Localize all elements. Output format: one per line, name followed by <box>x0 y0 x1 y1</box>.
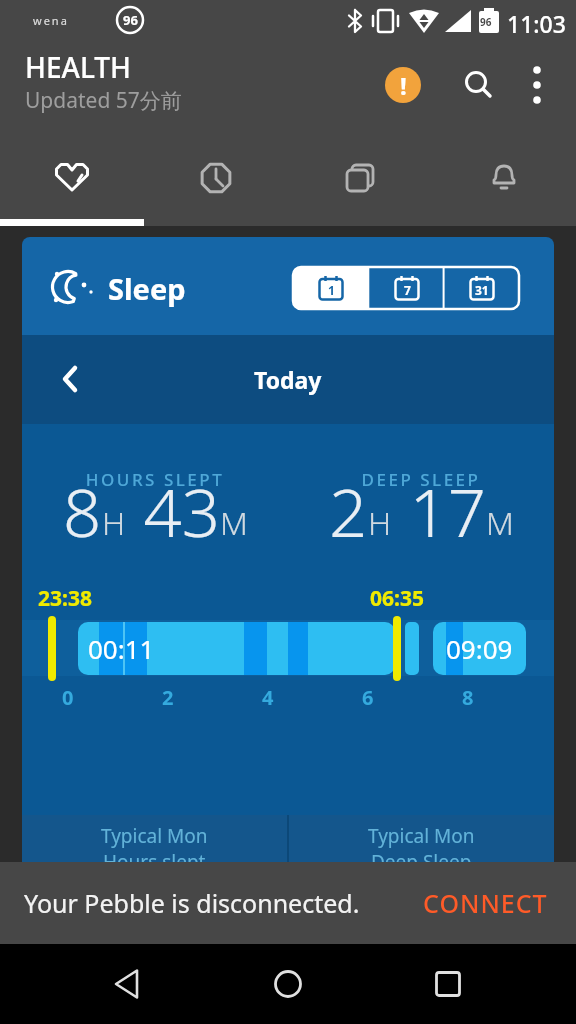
staticText: M <box>220 501 248 545</box>
button[interactable]: Today <box>22 335 554 424</box>
button[interactable]: 31 <box>444 267 519 309</box>
staticText: 96 <box>123 11 138 29</box>
staticText: Sleep <box>108 269 186 308</box>
staticText: ! <box>400 69 407 102</box>
staticText: 8 <box>63 465 102 556</box>
button[interactable]: Typical Mon <box>22 815 287 862</box>
staticText: Updated 57分前 <box>25 86 182 115</box>
button[interactable] <box>96 968 160 1000</box>
staticText: Deep Sleep <box>371 849 472 862</box>
staticText: 8 <box>462 684 474 711</box>
staticText: 31 <box>475 282 489 298</box>
staticText: M <box>486 501 514 545</box>
button[interactable] <box>460 67 496 103</box>
staticText: 0 <box>62 684 74 711</box>
staticText: DEEP SLEEP <box>288 468 554 491</box>
button[interactable] <box>432 130 576 226</box>
button[interactable] <box>0 130 144 226</box>
staticText: H <box>368 501 392 545</box>
button[interactable] <box>416 968 480 1000</box>
staticText: 09:09 <box>446 631 513 666</box>
button[interactable] <box>288 130 432 226</box>
staticText: 1 <box>328 282 335 298</box>
staticText: 00:11 <box>88 631 155 666</box>
button[interactable] <box>519 67 555 103</box>
staticText: H <box>102 501 126 545</box>
button[interactable]: Typical Mon <box>289 815 554 862</box>
staticText: 4 <box>262 684 274 711</box>
button[interactable]: ! <box>385 67 421 103</box>
staticText: 7 <box>404 282 411 298</box>
staticText: Today <box>254 364 322 395</box>
staticText: 96 <box>480 15 492 29</box>
staticText: 6 <box>362 684 374 711</box>
staticText: CONNECT <box>423 886 548 920</box>
staticText: 06:35 <box>370 584 424 613</box>
staticText: 2 <box>329 465 368 556</box>
button[interactable]: CONNECT <box>419 882 552 924</box>
staticText: Typical Mon <box>101 823 208 849</box>
staticText: wena <box>33 13 69 28</box>
button[interactable]: 7 <box>369 267 444 309</box>
staticText: Typical Mon <box>368 823 475 849</box>
staticText: 11:03 <box>507 8 566 39</box>
button[interactable] <box>144 130 288 226</box>
staticText: Your Pebble is disconnected. <box>24 886 419 920</box>
staticText: 43 <box>126 465 220 556</box>
staticText: Hours slept <box>103 849 206 862</box>
button[interactable]: 1 <box>293 267 369 309</box>
staticText: 17 <box>392 465 486 556</box>
staticText: 23:38 <box>38 584 92 613</box>
button[interactable] <box>256 968 320 1000</box>
staticText: 2 <box>162 684 174 711</box>
staticText: HEALTH <box>25 48 131 86</box>
staticText: HOURS SLEPT <box>22 468 288 491</box>
